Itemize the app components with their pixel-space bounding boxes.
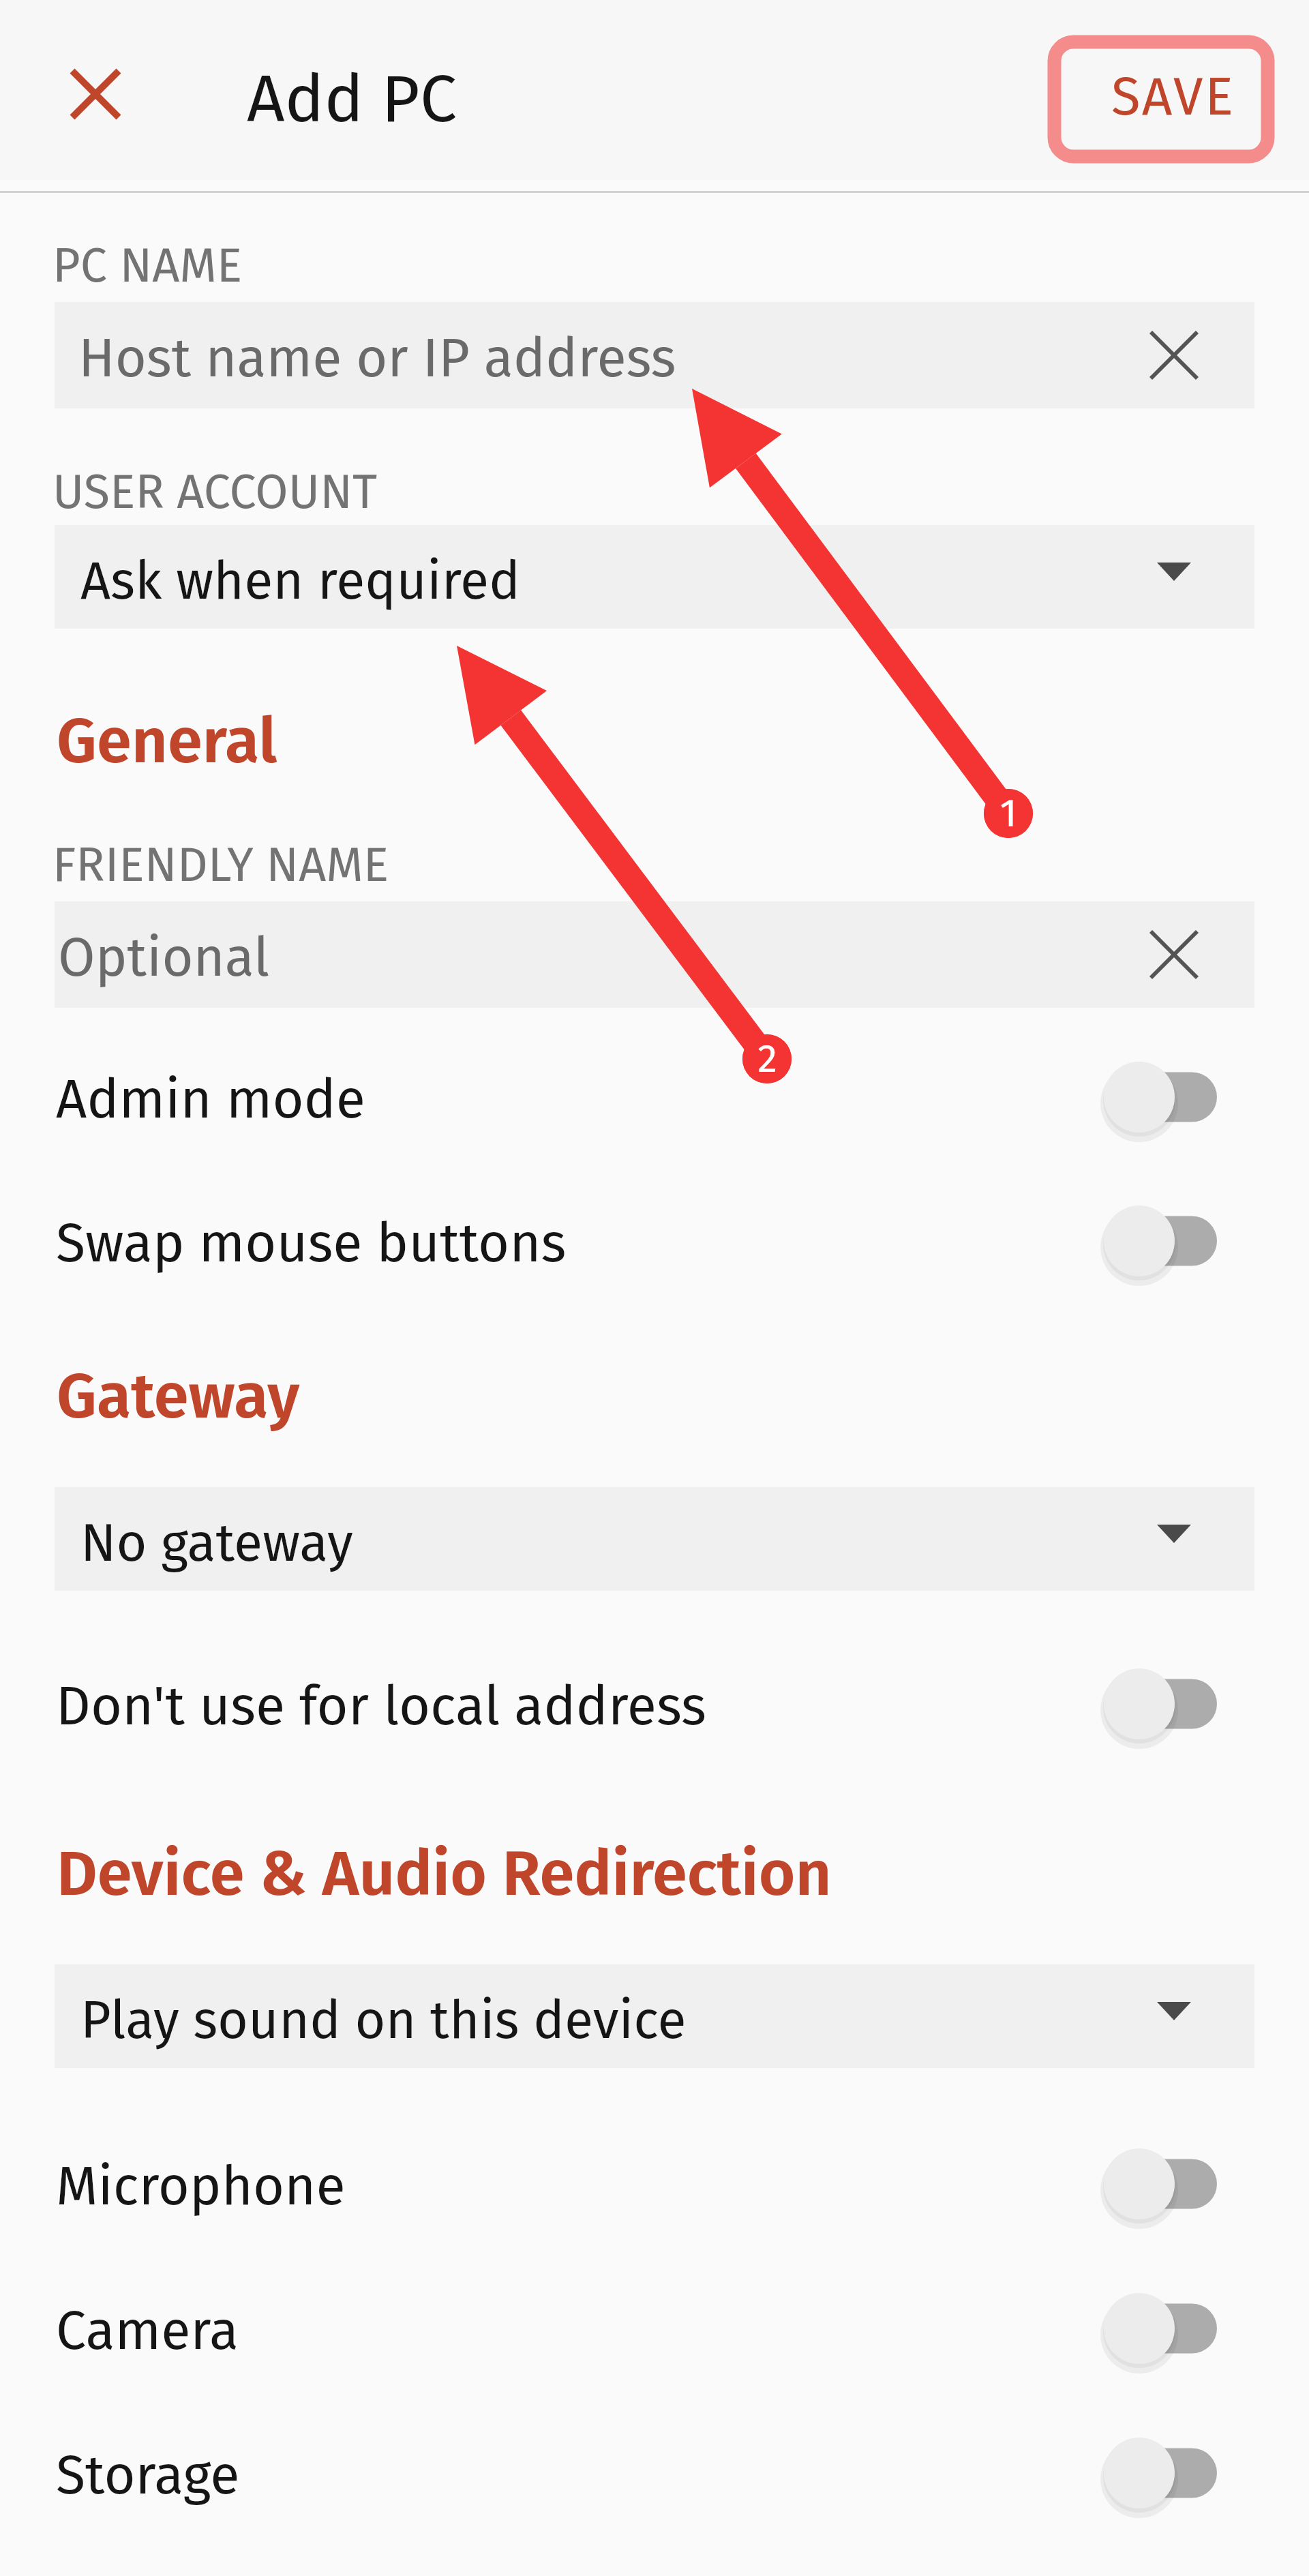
- staticText: Camera: [56, 2298, 239, 2363]
- staticText: 1: [999, 790, 1017, 837]
- button[interactable]: Host name or IP address: [55, 302, 1254, 408]
- button[interactable]: Close: [48, 46, 143, 142]
- button[interactable]: Ask when required: [55, 525, 1254, 629]
- staticText: 2: [757, 1035, 777, 1083]
- button[interactable]: Storage: [0, 2415, 1309, 2531]
- staticText: Ask when required: [80, 550, 521, 612]
- staticText: Play sound on this device: [80, 1989, 687, 2052]
- staticText: FRIENDLY NAME: [52, 837, 389, 894]
- button[interactable]: Clear text: [1143, 924, 1205, 985]
- staticText: Optional: [58, 925, 270, 990]
- staticText: Device & Audio Redirection: [57, 1836, 832, 1911]
- staticText: SAVE: [1111, 65, 1235, 129]
- button[interactable]: Camera: [0, 2271, 1309, 2386]
- button[interactable]: Optional: [55, 901, 1254, 1008]
- staticText: PC NAME: [52, 237, 243, 295]
- staticText: USER ACCOUNT: [52, 464, 378, 521]
- staticText: Don't use for local address: [56, 1674, 706, 1739]
- staticText: No gateway: [80, 1512, 353, 1574]
- button[interactable]: Clear text: [1143, 325, 1205, 386]
- staticText: Storage: [56, 2443, 240, 2508]
- button[interactable]: No gateway: [55, 1487, 1254, 1591]
- staticText: Admin mode: [56, 1067, 365, 1132]
- staticText: Gateway: [57, 1359, 300, 1434]
- button[interactable]: Swap mouse buttons: [0, 1183, 1309, 1299]
- staticText: Microphone: [56, 2154, 346, 2219]
- button[interactable]: SAVE: [1111, 62, 1235, 126]
- staticText: General: [57, 704, 277, 779]
- staticText: Swap mouse buttons: [56, 1211, 567, 1276]
- button[interactable]: Play sound on this device: [55, 1964, 1254, 2068]
- button[interactable]: Microphone: [0, 2126, 1309, 2242]
- button[interactable]: Admin mode: [0, 1039, 1309, 1155]
- staticText: Add PC: [247, 59, 457, 138]
- button[interactable]: Don't use for local address: [0, 1646, 1309, 1762]
- staticText: Host name or IP address: [78, 326, 676, 391]
